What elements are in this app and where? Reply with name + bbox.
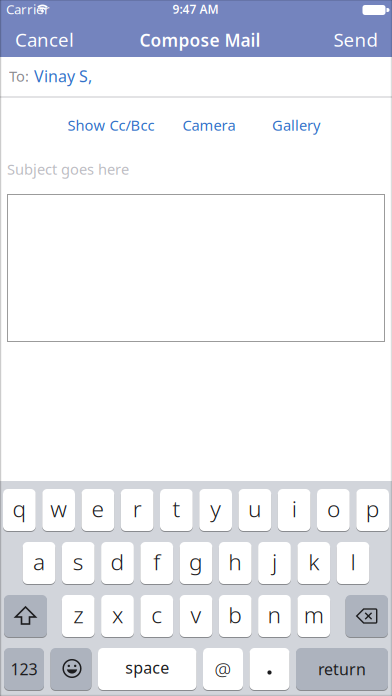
staticText: u bbox=[248, 493, 262, 523]
staticText: a bbox=[33, 546, 45, 576]
staticText: h bbox=[228, 546, 242, 576]
staticText: Cancel bbox=[15, 27, 74, 52]
staticText: Send bbox=[333, 27, 377, 52]
staticText: Gallery bbox=[272, 115, 320, 135]
staticText: w bbox=[50, 493, 67, 523]
staticText: Subject goes here bbox=[7, 159, 129, 179]
staticText: i bbox=[292, 493, 297, 523]
staticText: e bbox=[91, 493, 104, 523]
staticText: y bbox=[210, 493, 221, 523]
staticText: Show Cc/Bcc bbox=[67, 115, 154, 135]
staticText: t bbox=[172, 493, 180, 523]
staticText: c bbox=[151, 599, 162, 629]
staticText: v bbox=[190, 599, 201, 629]
staticText: Carrier bbox=[6, 0, 50, 18]
staticText: b bbox=[228, 599, 242, 629]
staticText: o bbox=[327, 493, 340, 523]
staticText: Vinay S, bbox=[34, 65, 92, 87]
staticText: f bbox=[153, 546, 160, 576]
staticText: Camera bbox=[182, 115, 235, 135]
staticText: k bbox=[308, 546, 319, 576]
staticText: l bbox=[350, 546, 355, 576]
staticText: d bbox=[110, 546, 124, 576]
staticText: x bbox=[112, 599, 123, 629]
staticText: 9:47 AM bbox=[172, 1, 218, 17]
staticText: z bbox=[73, 599, 83, 629]
staticText: Compose Mail bbox=[139, 28, 260, 51]
staticText: j bbox=[272, 546, 277, 576]
staticText: g bbox=[189, 546, 203, 576]
staticText: q bbox=[12, 493, 26, 523]
staticText: space bbox=[125, 657, 169, 678]
staticText: p bbox=[366, 493, 380, 523]
staticText: r bbox=[133, 493, 142, 523]
staticText: 123 bbox=[10, 658, 37, 680]
staticText: s bbox=[73, 546, 84, 576]
staticText: m bbox=[304, 599, 324, 629]
staticText: return bbox=[318, 658, 366, 680]
staticText: n bbox=[267, 599, 281, 629]
staticText: To: bbox=[9, 66, 29, 86]
staticText: @ bbox=[214, 657, 231, 681]
